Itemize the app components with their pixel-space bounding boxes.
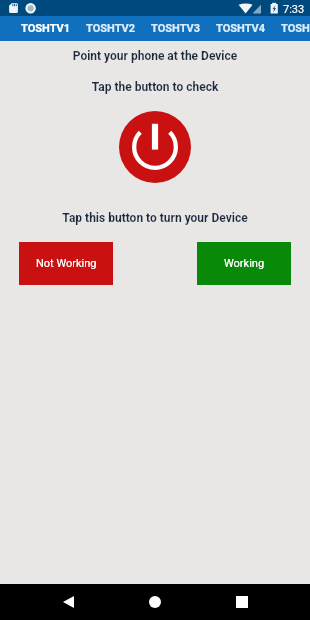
staticText: TOSHTV5 bbox=[281, 22, 310, 35]
button[interactable]: Home bbox=[135, 584, 175, 620]
staticText: TOSHTV3 bbox=[151, 22, 201, 35]
button[interactable]: Back bbox=[48, 584, 88, 620]
staticText: TOSHTV2 bbox=[86, 22, 136, 35]
button[interactable]: TOSHTV2 bbox=[78, 16, 143, 41]
button[interactable]: Power on / off bbox=[119, 111, 191, 183]
button[interactable]: Not Working bbox=[19, 242, 113, 285]
staticText: 7:33 bbox=[283, 3, 305, 16]
button[interactable]: TOSHTV4 bbox=[208, 16, 273, 41]
staticText: Tap this button to turn your Device bbox=[0, 211, 310, 225]
button[interactable]: TOSHTV1 bbox=[13, 16, 78, 41]
staticText: Point your phone at the Device bbox=[0, 49, 310, 63]
staticText: Tap the button to check bbox=[0, 80, 310, 94]
staticText: TOSHTV1 bbox=[21, 22, 71, 35]
button[interactable]: Working bbox=[197, 242, 291, 285]
staticText: Working bbox=[224, 257, 265, 270]
button[interactable]: Recent apps bbox=[222, 584, 262, 620]
button[interactable]: TOSHTV3 bbox=[143, 16, 208, 41]
staticText: Not Working bbox=[36, 257, 97, 270]
staticText: TOSHTV4 bbox=[216, 22, 266, 35]
button[interactable]: TOSHTV5 bbox=[273, 16, 310, 41]
